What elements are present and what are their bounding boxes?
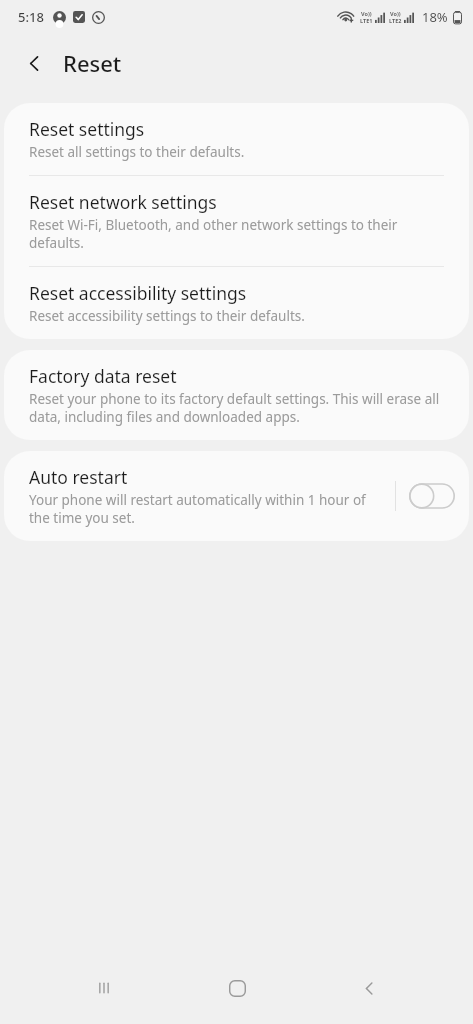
staticText: Reset your phone to its factory default …: [29, 390, 447, 426]
button[interactable]: Auto restart: [4, 451, 469, 541]
staticText: Reset Wi-Fi, Bluetooth, and other networ…: [29, 216, 447, 252]
button[interactable]: Reset settings: [4, 103, 469, 175]
button[interactable]: Factory data reset: [4, 350, 469, 440]
staticText: Factory data reset: [29, 364, 177, 388]
staticText: Your phone will restart automatically wi…: [29, 491, 385, 527]
staticText: 5:18: [18, 8, 44, 26]
staticText: Auto restart: [29, 465, 128, 489]
button[interactable]: Reset network settings: [4, 176, 469, 266]
staticText: 18%: [422, 8, 448, 26]
staticText: Reset settings: [29, 117, 145, 141]
button[interactable]: Navigate up: [16, 45, 52, 81]
staticText: Reset accessibility settings: [29, 281, 247, 305]
staticText: LTE2: [389, 17, 402, 24]
staticText: LTE1: [360, 17, 373, 24]
button[interactable]: Recent apps: [75, 959, 133, 1017]
button[interactable]: Auto restart, off: [409, 481, 455, 511]
staticText: Vo)): [361, 10, 372, 17]
button[interactable]: Home: [208, 959, 266, 1017]
staticText: Reset network settings: [29, 190, 217, 214]
button[interactable]: Reset accessibility settings: [4, 267, 469, 339]
staticText: Reset accessibility settings to their de…: [29, 307, 305, 325]
button[interactable]: Back: [340, 959, 398, 1017]
staticText: Vo)): [390, 10, 401, 17]
staticText: Reset all settings to their defaults.: [29, 143, 245, 161]
staticText: Reset: [63, 48, 122, 78]
